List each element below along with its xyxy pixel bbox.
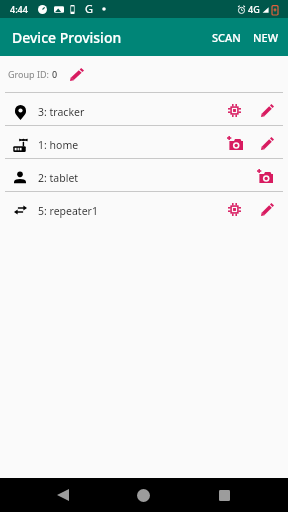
staticText: G bbox=[85, 1, 94, 16]
button[interactable]: Edit bbox=[253, 96, 282, 125]
staticText: 3: tracker bbox=[38, 105, 85, 119]
button[interactable]: Add photo bbox=[253, 162, 282, 191]
button[interactable]: Back bbox=[50, 482, 76, 508]
button[interactable]: Provision bbox=[220, 96, 249, 125]
staticText: 0 bbox=[52, 68, 58, 80]
staticText: Group ID: bbox=[8, 68, 52, 80]
staticText: 2: tablet bbox=[38, 171, 79, 185]
button[interactable]: Edit bbox=[253, 195, 282, 224]
staticText: 5: repeater1 bbox=[38, 204, 98, 218]
button[interactable]: 2: tablet bbox=[0, 159, 288, 192]
button[interactable]: NEW bbox=[247, 21, 288, 54]
button[interactable]: Recents bbox=[211, 482, 237, 508]
button[interactable]: 3: tracker bbox=[0, 93, 288, 126]
button[interactable]: Home bbox=[130, 482, 156, 508]
button[interactable]: SCAN bbox=[206, 21, 247, 54]
button[interactable]: Provision bbox=[220, 195, 249, 224]
staticText: NEW bbox=[253, 30, 279, 45]
button[interactable]: 5: repeater1 bbox=[0, 192, 288, 224]
button[interactable]: Edit group id bbox=[66, 63, 88, 85]
staticText: SCAN bbox=[212, 30, 241, 45]
staticText: 4:44 bbox=[10, 3, 28, 15]
button[interactable]: Edit bbox=[253, 129, 282, 158]
staticText: Device Provision bbox=[12, 28, 122, 47]
staticText: 4G bbox=[248, 3, 260, 15]
button[interactable]: Add photo bbox=[220, 129, 249, 158]
staticText: 1: home bbox=[38, 138, 79, 152]
button[interactable]: 1: home bbox=[0, 126, 288, 159]
